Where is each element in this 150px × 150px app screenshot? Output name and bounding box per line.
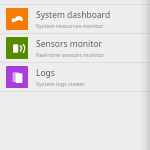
staticText: Logs bbox=[36, 67, 55, 79]
button[interactable] bbox=[0, 0, 150, 4]
button[interactable]: Sensors monitor bbox=[0, 34, 150, 62]
staticText: Sensors monitor bbox=[36, 38, 102, 50]
staticText: System dashboard bbox=[36, 9, 111, 21]
button[interactable]: Logs bbox=[0, 63, 150, 91]
staticText: System logs viewer bbox=[36, 80, 86, 87]
staticText: Real-time sensors monitor bbox=[36, 51, 105, 58]
button[interactable]: System dashboard bbox=[0, 5, 150, 33]
staticText: System resources monitor bbox=[36, 22, 104, 29]
